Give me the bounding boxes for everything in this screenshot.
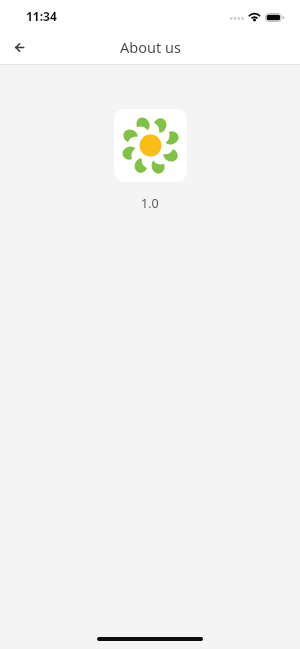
staticText: About us xyxy=(120,37,181,57)
button[interactable]: Back xyxy=(3,31,35,63)
staticText: 1.0 xyxy=(141,195,159,212)
staticText: 11:34 xyxy=(26,8,57,24)
